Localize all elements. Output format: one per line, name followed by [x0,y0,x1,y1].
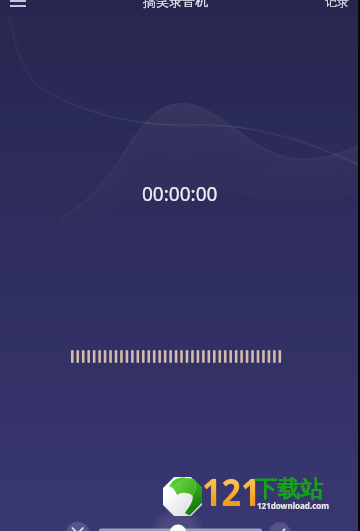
button[interactable]: Cancel [66,520,90,531]
staticText: 记录 [325,0,349,9]
staticText: 121download.com [257,500,330,511]
button[interactable]: Done [269,520,291,531]
staticText: 00:00:00 [142,181,218,207]
button[interactable]: 记录 [314,0,360,9]
staticText: 下载站 [254,475,323,504]
button[interactable]: Menu [0,0,36,9]
button[interactable]: Record [165,520,191,531]
staticText: 搞笑录音机 [143,0,208,9]
staticText: 121 [202,465,261,511]
